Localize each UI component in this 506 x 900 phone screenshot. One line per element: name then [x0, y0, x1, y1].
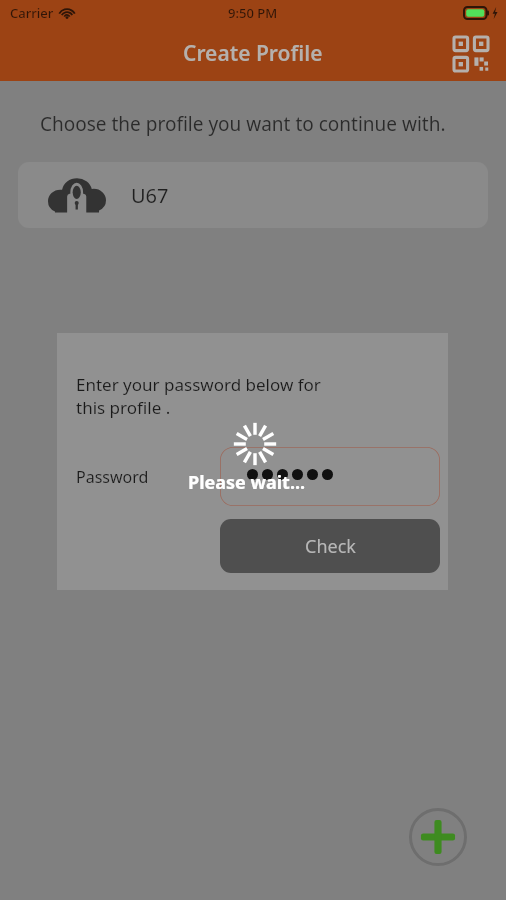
button[interactable]: Scan QR code: [450, 33, 492, 75]
staticText: 9:50 PM: [228, 4, 278, 22]
staticText: Password: [76, 466, 149, 488]
button[interactable]: Check: [220, 519, 440, 573]
staticText: U67: [131, 182, 169, 209]
staticText: Check: [305, 534, 356, 559]
staticText: Create Profile: [183, 39, 323, 68]
staticText: Enter your password below for this profi…: [76, 373, 321, 419]
staticText: Please wait...: [188, 470, 306, 495]
button[interactable]: [220, 447, 440, 506]
staticText: Choose the profile you want to continue …: [40, 111, 506, 137]
button[interactable]: U67: [18, 162, 488, 228]
button[interactable]: Add profile: [408, 807, 468, 867]
staticText: Carrier: [10, 4, 54, 22]
